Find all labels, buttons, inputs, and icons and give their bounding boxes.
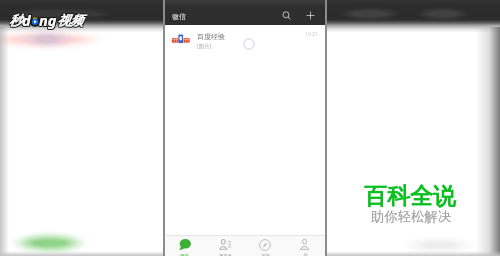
staticText: 视频: [58, 12, 84, 28]
staticText: ng: [38, 9, 56, 29]
staticText: 秒: [9, 11, 22, 27]
staticText: 秒: [10, 12, 23, 28]
staticText: d: [22, 10, 31, 30]
staticText: 秒: [8, 12, 21, 28]
staticText: ng: [39, 10, 57, 30]
staticText: ng: [40, 11, 58, 31]
staticText: 秒: [8, 11, 21, 27]
staticText: d: [21, 10, 30, 30]
staticText: ng: [40, 10, 58, 30]
staticText: 我: [303, 253, 308, 256]
staticText: 秒: [10, 11, 23, 27]
button[interactable]: 微信: [164, 236, 205, 256]
staticText: 视频: [58, 11, 84, 27]
staticText: ng: [39, 11, 57, 31]
button[interactable]: 我: [285, 236, 325, 256]
staticText: 百度经验: [197, 32, 225, 41]
staticText: 10:23: [305, 31, 318, 38]
staticText: 微信: [172, 12, 186, 21]
staticText: 视频: [56, 13, 82, 29]
staticText: 视频: [56, 12, 82, 28]
staticText: 秒: [9, 13, 22, 29]
staticText: d: [22, 9, 31, 29]
staticText: 视频: [58, 13, 84, 29]
staticText: 秒: [9, 12, 22, 28]
staticText: d: [21, 9, 30, 29]
staticText: 视频: [57, 12, 83, 28]
staticText: 秒: [10, 13, 23, 29]
staticText: 视频: [56, 11, 82, 27]
button[interactable]: New chat: [301, 6, 320, 25]
button[interactable]: Search: [277, 6, 296, 25]
staticText: 视频: [57, 13, 83, 29]
staticText: 助你轻松解决: [371, 208, 452, 225]
staticText: 通讯录: [219, 253, 232, 256]
staticText: 发现: [261, 253, 270, 256]
staticText: ng: [39, 9, 57, 29]
staticText: d: [22, 11, 31, 31]
button[interactable]: 通讯录: [205, 236, 245, 256]
staticText: d: [21, 11, 30, 31]
staticText: 秒: [8, 13, 21, 29]
staticText: 视频: [57, 11, 83, 27]
staticText: d: [23, 10, 32, 30]
staticText: 微信: [180, 253, 189, 256]
staticText: ng: [38, 11, 56, 31]
staticText: d: [23, 9, 32, 29]
staticText: d: [23, 11, 32, 31]
staticText: [图片]: [197, 42, 212, 49]
button[interactable]: 百度经验: [164, 26, 325, 52]
staticText: ng: [38, 10, 56, 30]
button[interactable]: 发现: [245, 236, 285, 256]
staticText: 百科全说: [364, 182, 456, 211]
staticText: ng: [40, 9, 58, 29]
